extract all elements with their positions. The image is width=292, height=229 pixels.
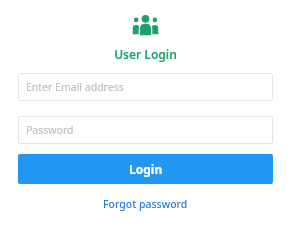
button[interactable]: Forgot password bbox=[99, 195, 192, 213]
other: Users bbox=[133, 13, 158, 36]
staticText: Login bbox=[129, 161, 163, 177]
button[interactable]: Password bbox=[18, 116, 273, 144]
button[interactable]: Login bbox=[18, 154, 273, 184]
button[interactable]: Enter Email address bbox=[18, 73, 273, 101]
staticText: Enter Email address bbox=[26, 80, 124, 94]
staticText: User Login bbox=[114, 46, 177, 62]
staticText: Password bbox=[26, 123, 74, 137]
staticText: Forgot password bbox=[103, 197, 188, 211]
